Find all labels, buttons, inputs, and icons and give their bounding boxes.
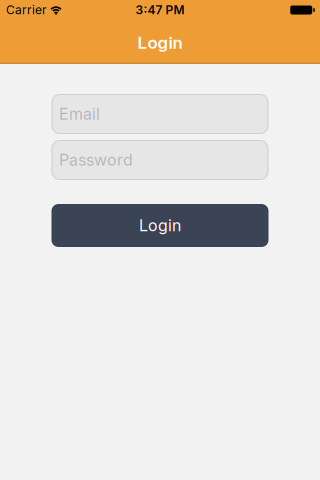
- button[interactable]: Email: [51, 94, 268, 134]
- staticText: 3:47 PM: [135, 3, 184, 17]
- button[interactable]: Password: [51, 140, 268, 180]
- staticText: Password: [59, 150, 133, 170]
- staticText: Carrier: [6, 3, 47, 17]
- button[interactable]: Login: [51, 204, 268, 247]
- staticText: Email: [59, 104, 100, 124]
- staticText: Login: [137, 32, 182, 53]
- staticText: Login: [139, 216, 181, 235]
